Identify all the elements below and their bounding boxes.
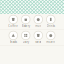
- button[interactable]: Dairy: [19, 31, 32, 44]
- button[interactable]: Bakery: [19, 15, 32, 28]
- button[interactable]: Snacks: [7, 31, 19, 44]
- staticText: Fruit: [35, 24, 41, 28]
- button[interactable]: Fruit: [32, 15, 44, 28]
- staticText: Snacks: [10, 40, 17, 44]
- staticText: Drinks: [47, 24, 55, 28]
- staticText: Frozen: [46, 40, 55, 44]
- button[interactable]: Drinks: [44, 15, 57, 28]
- staticText: Bakery: [22, 24, 30, 28]
- button[interactable]: Meat: [32, 31, 44, 44]
- staticText: Meat: [35, 40, 41, 44]
- button[interactable]: Coffee: [7, 15, 19, 28]
- staticText: Coffee: [8, 24, 18, 28]
- button[interactable]: Frozen: [44, 31, 57, 44]
- staticText: Dairy: [23, 40, 29, 44]
